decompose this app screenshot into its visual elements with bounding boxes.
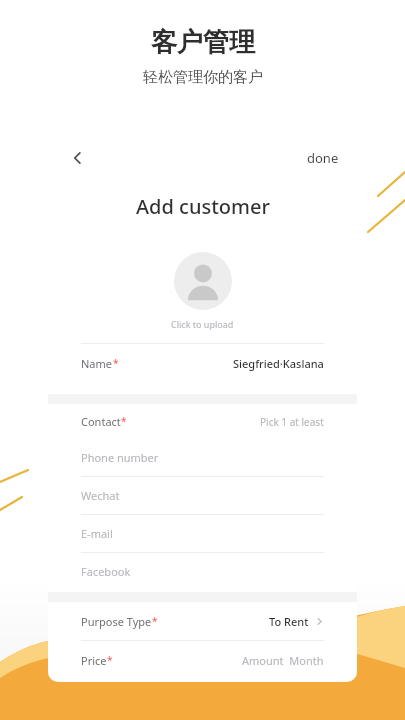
- button[interactable]: Back: [60, 140, 96, 176]
- staticText: *: [107, 653, 113, 667]
- staticText: Contact: [81, 414, 121, 429]
- button[interactable]: Purpose Type: [69, 602, 336, 640]
- staticText: Name: [81, 356, 113, 371]
- staticText: Price: [81, 653, 107, 668]
- staticText: E-mail: [81, 526, 113, 541]
- staticText: Phone number: [81, 450, 159, 465]
- staticText: Amount Month: [242, 653, 324, 668]
- staticText: *: [113, 356, 119, 370]
- staticText: Pick 1 at least: [260, 415, 324, 429]
- staticText: Facebook: [81, 564, 131, 579]
- staticText: 客户管理: [151, 26, 255, 59]
- staticText: Click to upload: [171, 318, 234, 330]
- staticText: Siegfried·Kaslana: [233, 356, 324, 371]
- button[interactable]: E-mail: [69, 515, 336, 552]
- button[interactable]: Wechat: [69, 477, 336, 514]
- button[interactable]: Phone number: [69, 439, 336, 476]
- staticText: Add customer: [136, 193, 270, 220]
- staticText: Wechat: [81, 488, 120, 503]
- staticText: 轻松管理你的客户: [143, 68, 263, 87]
- staticText: done: [307, 149, 339, 167]
- button[interactable]: Click to upload photo: [174, 252, 232, 310]
- staticText: *: [152, 614, 158, 628]
- button[interactable]: Facebook: [69, 553, 336, 590]
- staticText: Purpose Type: [81, 614, 152, 629]
- button[interactable]: Name: [69, 344, 336, 382]
- button[interactable]: Price: [69, 641, 336, 679]
- button[interactable]: done: [299, 143, 347, 173]
- staticText: *: [121, 414, 127, 428]
- staticText: To Rent: [269, 614, 309, 629]
